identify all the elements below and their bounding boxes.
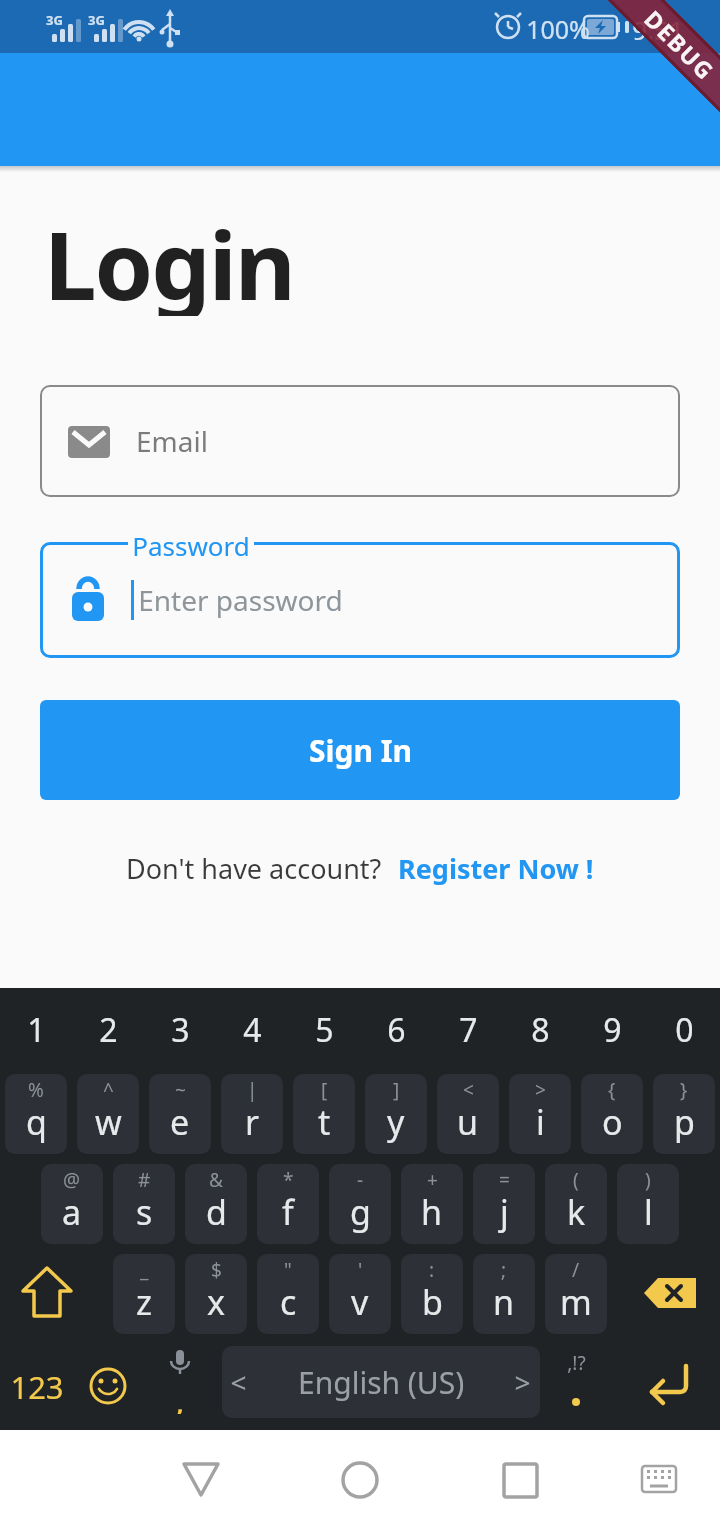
button[interactable] <box>632 1258 712 1334</box>
button[interactable]: [ <box>293 1074 355 1154</box>
staticText: o <box>602 1099 623 1145</box>
button[interactable] <box>12 1258 92 1334</box>
button[interactable]: ( <box>545 1164 607 1244</box>
staticText: 0 <box>675 1008 694 1052</box>
staticText: Password <box>132 528 250 558</box>
staticText: 3 <box>171 1008 190 1052</box>
button[interactable]: } <box>653 1074 715 1154</box>
staticText: / <box>572 1257 580 1283</box>
staticText: DEBUG <box>638 3 720 86</box>
staticText: ' <box>358 1257 363 1283</box>
staticText: , <box>175 1378 185 1414</box>
staticText: English (US) <box>298 1362 465 1403</box>
staticText: > <box>514 1363 531 1401</box>
button[interactable]: < <box>437 1074 499 1154</box>
staticText: l <box>644 1189 653 1235</box>
button[interactable] <box>328 1445 392 1509</box>
staticText: q <box>26 1099 47 1145</box>
staticText: @ <box>63 1167 81 1193</box>
staticText: ; <box>501 1257 507 1283</box>
staticText: 1 <box>27 1008 46 1052</box>
button[interactable] <box>76 1346 140 1418</box>
button[interactable] <box>616 1346 712 1418</box>
button[interactable] <box>548 1346 608 1418</box>
button[interactable]: + <box>401 1164 463 1244</box>
staticText: 3G <box>46 11 63 27</box>
staticText: v <box>351 1279 369 1325</box>
staticText: Sign In <box>309 730 412 771</box>
staticText: ^ <box>103 1077 114 1103</box>
button[interactable]: - <box>329 1164 391 1244</box>
staticText: a <box>62 1189 82 1235</box>
button[interactable]: ~ <box>149 1074 211 1154</box>
button[interactable]: { <box>581 1074 643 1154</box>
staticText: " <box>284 1257 292 1283</box>
button[interactable]: ' <box>329 1254 391 1334</box>
staticText: 5 <box>315 1008 334 1052</box>
button[interactable]: @ <box>41 1164 103 1244</box>
staticText: > <box>535 1077 546 1103</box>
button[interactable]: / <box>545 1254 607 1334</box>
button[interactable]: % <box>5 1074 67 1154</box>
staticText: < <box>230 1363 247 1401</box>
button[interactable] <box>146 1346 214 1418</box>
staticText: Enter password <box>138 581 343 619</box>
button[interactable]: # <box>113 1164 175 1244</box>
button[interactable] <box>626 1445 690 1509</box>
staticText: _ <box>140 1257 149 1283</box>
button[interactable]: $ <box>185 1254 247 1334</box>
staticText: g <box>350 1189 371 1235</box>
staticText: e <box>170 1099 190 1145</box>
button[interactable]: Enter password <box>40 542 680 658</box>
staticText: s <box>136 1189 153 1235</box>
staticText: = <box>499 1167 510 1193</box>
staticText: Don't have account? <box>126 850 382 887</box>
staticText: ,!? <box>567 1350 586 1376</box>
button[interactable]: " <box>257 1254 319 1334</box>
staticText: ( <box>573 1167 579 1193</box>
staticText: # <box>138 1167 151 1193</box>
button[interactable]: English (US) <box>222 1346 540 1418</box>
button[interactable]: & <box>185 1164 247 1244</box>
button[interactable] <box>488 1445 552 1509</box>
staticText: : <box>429 1257 435 1283</box>
button[interactable]: : <box>401 1254 463 1334</box>
staticText: c <box>280 1279 297 1325</box>
staticText: 2 <box>99 1008 118 1052</box>
staticText: 9 <box>603 1008 622 1052</box>
staticText: + <box>427 1167 438 1193</box>
button[interactable]: Sign In <box>40 700 680 800</box>
staticText: h <box>421 1189 443 1235</box>
button[interactable]: > <box>509 1074 571 1154</box>
staticText: * <box>283 1167 294 1193</box>
button[interactable]: | <box>221 1074 283 1154</box>
button[interactable]: ^ <box>77 1074 139 1154</box>
staticText: ~ <box>175 1077 186 1103</box>
staticText: < <box>463 1077 474 1103</box>
staticText: p <box>674 1099 695 1145</box>
button[interactable]: _ <box>113 1254 175 1334</box>
staticText: 9:51 <box>632 12 684 42</box>
staticText: 100% <box>526 12 590 42</box>
button[interactable]: Register Now ! <box>398 850 594 887</box>
staticText: 123 <box>10 1366 64 1406</box>
staticText: m <box>560 1279 592 1325</box>
button[interactable]: * <box>257 1164 319 1244</box>
staticText: } <box>680 1077 688 1103</box>
staticText: 6 <box>387 1008 406 1052</box>
staticText: i <box>536 1099 545 1145</box>
button[interactable]: = <box>473 1164 535 1244</box>
staticText: [ <box>321 1077 328 1103</box>
staticText: 4 <box>243 1008 262 1052</box>
button[interactable] <box>0 1346 72 1418</box>
staticText: ] <box>393 1077 400 1103</box>
button[interactable]: Email <box>40 385 680 497</box>
staticText: - <box>357 1167 364 1193</box>
staticText: & <box>209 1167 223 1193</box>
button[interactable] <box>170 1445 234 1509</box>
staticText: y <box>387 1099 405 1145</box>
button[interactable]: ; <box>473 1254 535 1334</box>
staticText: | <box>247 1077 258 1103</box>
button[interactable]: ] <box>365 1074 427 1154</box>
button[interactable]: ) <box>617 1164 679 1244</box>
